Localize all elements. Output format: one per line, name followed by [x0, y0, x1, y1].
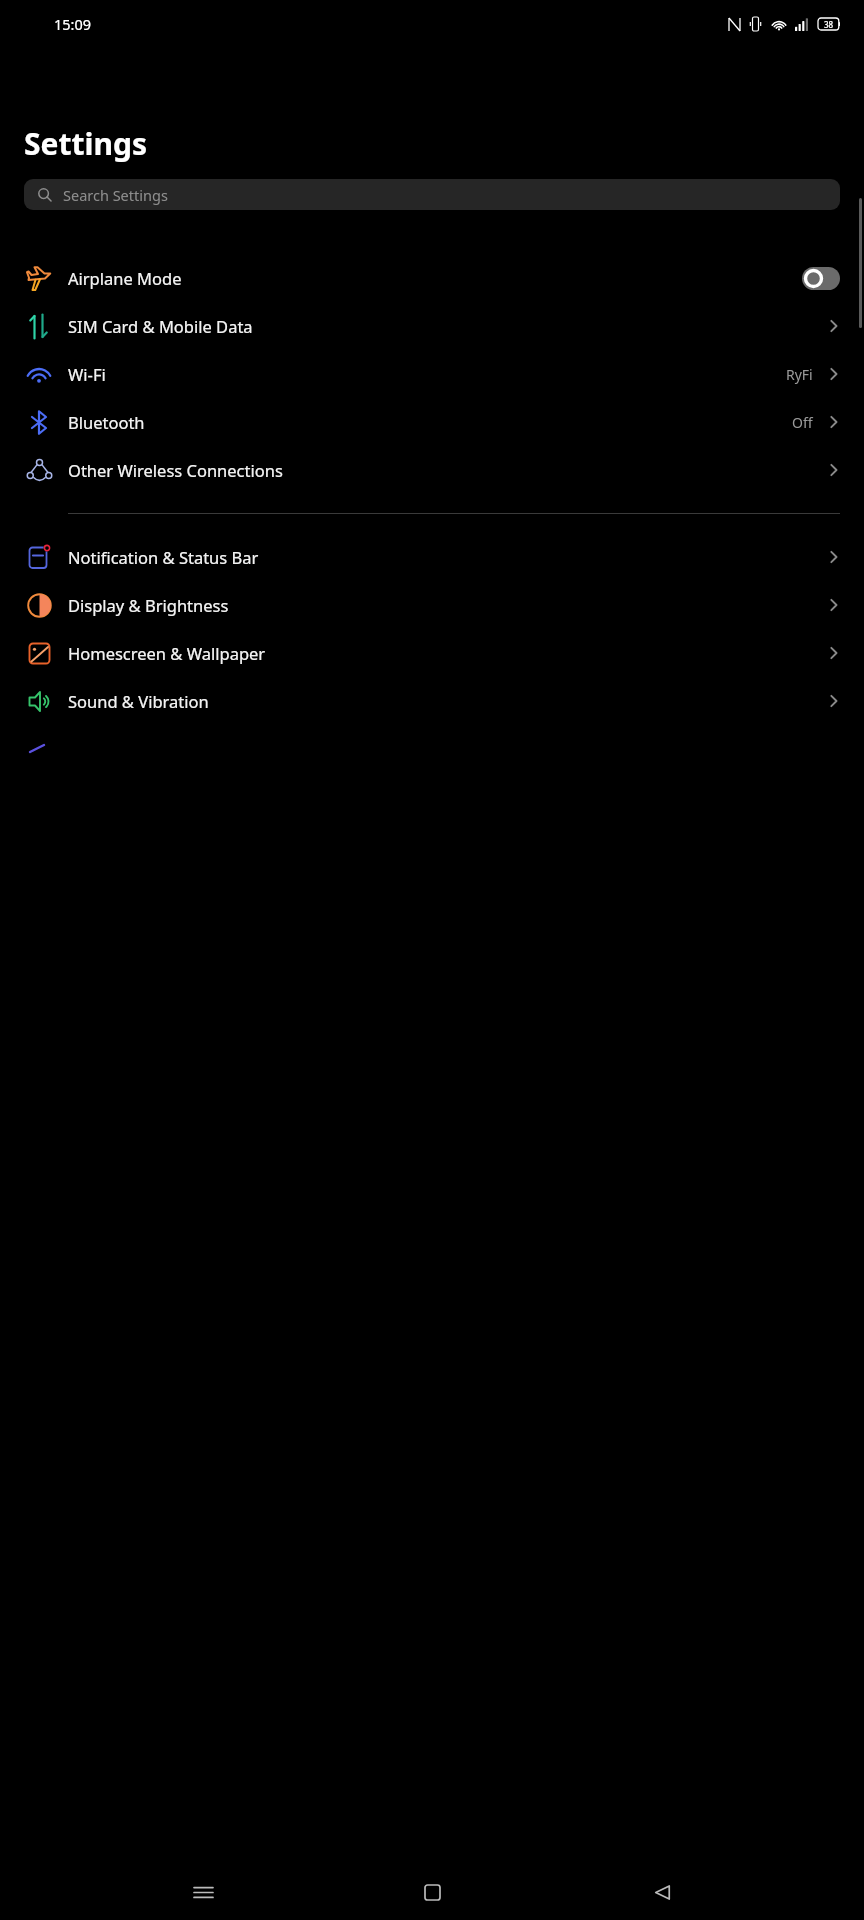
button[interactable]: Search Settings: [24, 179, 840, 210]
staticText: Off: [792, 413, 813, 432]
button[interactable]: Homescreen & Wallpaper: [0, 629, 864, 677]
staticText: Notification & Status Bar: [68, 546, 259, 568]
button[interactable]: Wi-Fi: [0, 350, 864, 398]
button[interactable]: Home: [405, 1865, 459, 1919]
button[interactable]: Airplane Mode: [0, 254, 864, 302]
staticText: SIM Card & Mobile Data: [68, 315, 253, 337]
staticText: Wi-Fi: [68, 363, 106, 385]
staticText: Search Settings: [63, 185, 168, 205]
button[interactable]: Recent apps: [176, 1865, 230, 1919]
staticText: Homescreen & Wallpaper: [68, 642, 266, 664]
staticText: 38: [824, 19, 834, 30]
staticText: Display & Brightness: [68, 594, 229, 616]
button[interactable]: Display & Brightness: [0, 581, 864, 629]
staticText: Sound & Vibration: [68, 690, 209, 712]
staticText: Airplane Mode: [68, 267, 182, 289]
staticText: Bluetooth: [68, 411, 145, 433]
staticText: Other Wireless Connections: [68, 459, 283, 481]
button[interactable]: SIM Card & Mobile Data: [0, 302, 864, 350]
button[interactable]: Notification & Status Bar: [0, 533, 864, 581]
button[interactable]: Other Wireless Connections: [0, 446, 864, 494]
staticText: RyFi: [786, 365, 813, 384]
button[interactable]: Sound & Vibration: [0, 677, 864, 725]
button[interactable]: Airplane Mode toggle: [802, 267, 840, 290]
staticText: 15:09: [54, 14, 92, 34]
staticText: Settings: [24, 123, 147, 164]
button[interactable]: Back: [635, 1865, 689, 1919]
button[interactable]: Bluetooth: [0, 398, 864, 446]
